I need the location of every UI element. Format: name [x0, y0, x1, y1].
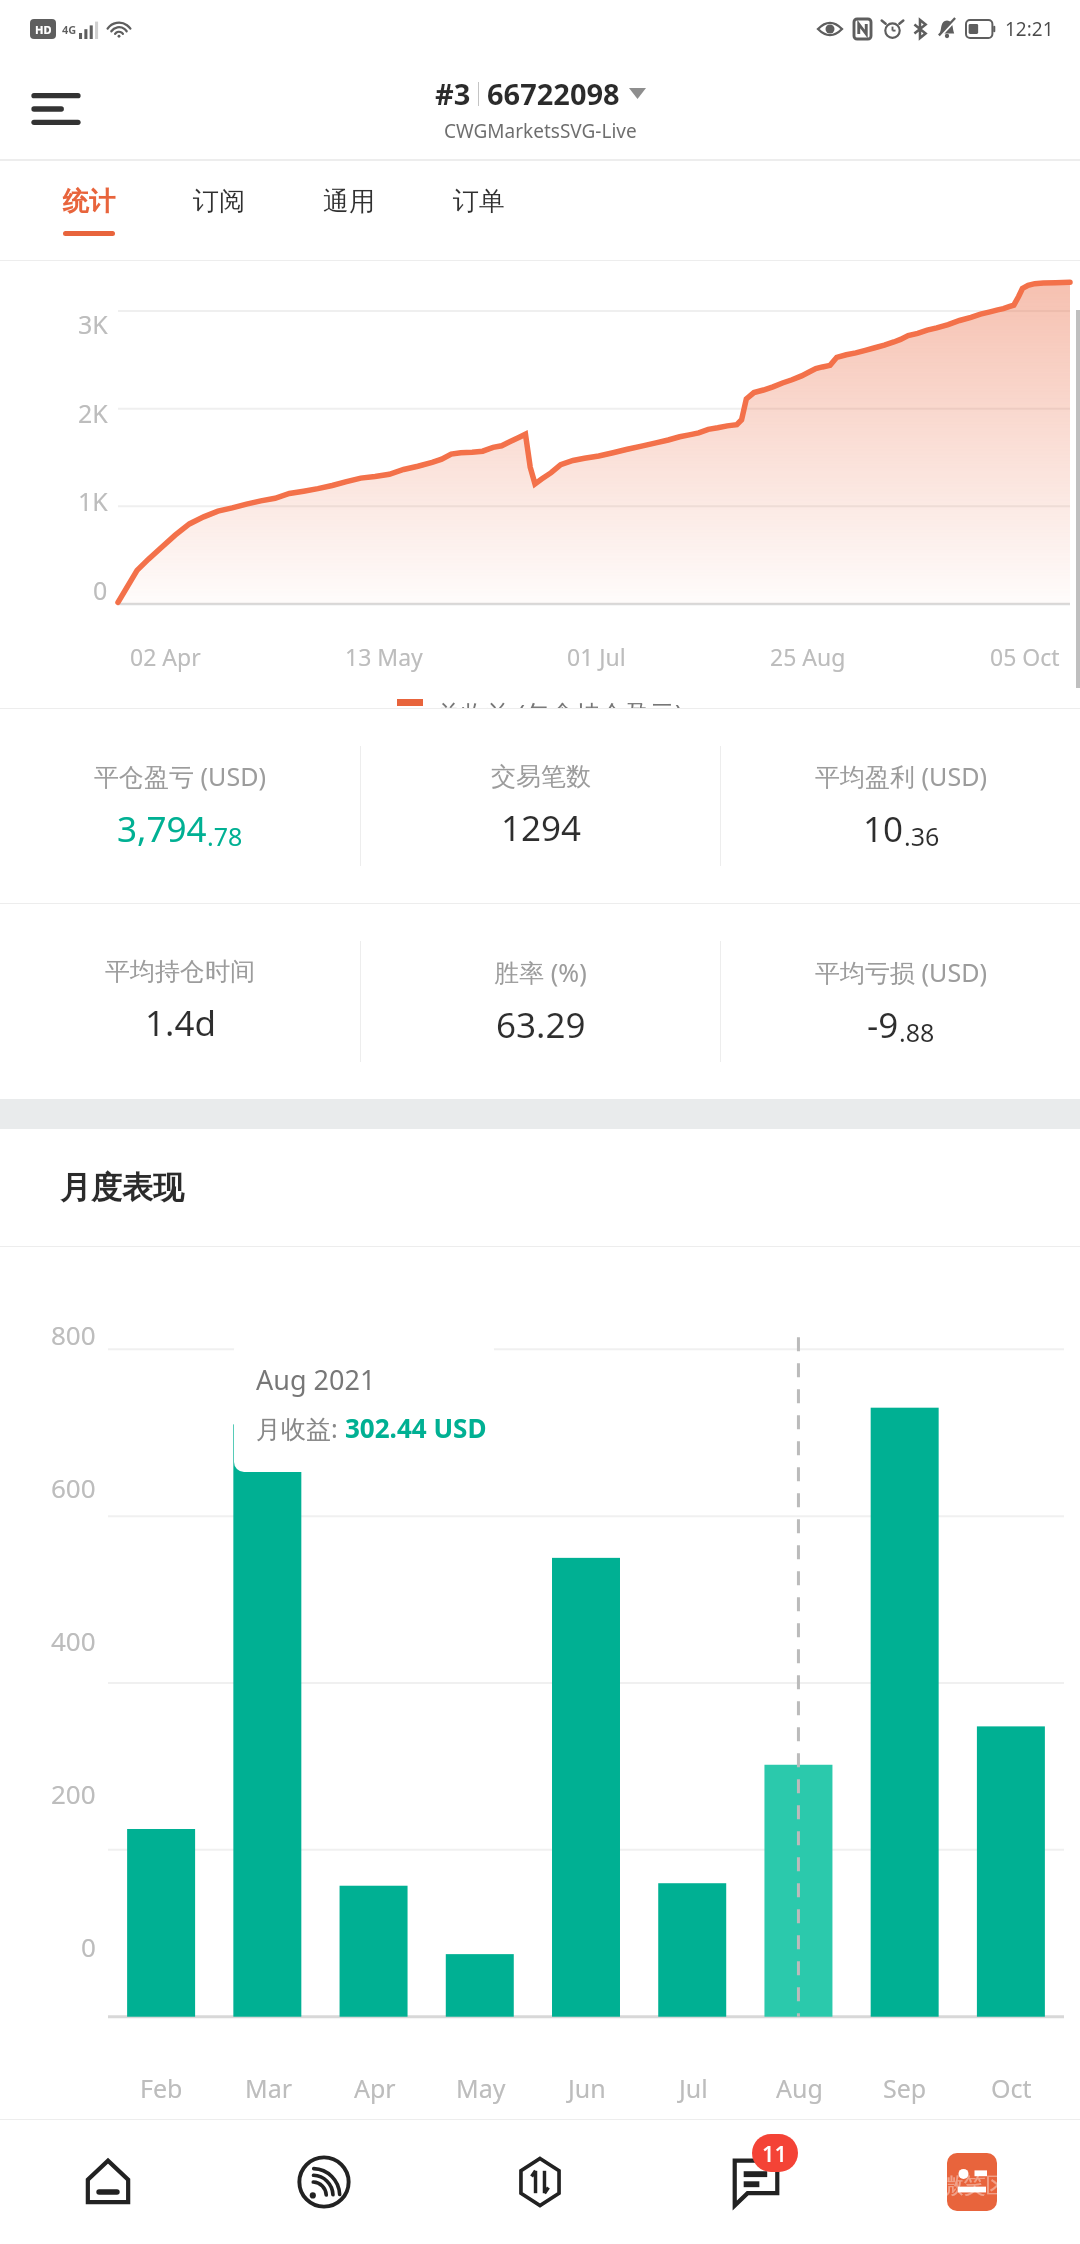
button[interactable]: 平均盈利 (USD) [721, 709, 1080, 903]
staticText: 12:21 [1005, 16, 1054, 42]
staticText: 10 [863, 805, 904, 853]
staticText: 1294 [501, 804, 582, 852]
staticText: #3 [435, 74, 471, 113]
staticText: 13 May [345, 641, 423, 672]
button[interactable]: 通用 [284, 161, 414, 260]
staticText: 平仓盈亏 (USD) [94, 759, 266, 793]
staticText: 月度表现 [60, 1168, 184, 1207]
staticText: 交易笔数 [491, 761, 591, 792]
staticText: 平均亏损 (USD) [815, 955, 987, 989]
staticText: Sep [883, 2071, 927, 2105]
staticText: Feb [140, 2071, 183, 2105]
button[interactable]: #3 [435, 74, 646, 144]
button[interactable]: 订单 [414, 161, 544, 260]
staticText: Aug 2021 [256, 1361, 376, 1398]
staticText: @微微笑区 [900, 2169, 1008, 2199]
staticText: 01 Jul [567, 641, 626, 672]
staticText: 胜率 (%) [494, 955, 587, 989]
button[interactable]: 平仓盈亏 (USD) [0, 709, 360, 903]
staticText: 3K [78, 307, 108, 341]
button[interactable]: Profile [864, 2120, 1080, 2244]
staticText: 1.4d [145, 999, 216, 1047]
button[interactable]: 统计 [24, 161, 154, 260]
staticText: 通用 [323, 185, 375, 218]
staticText: .36 [904, 819, 940, 853]
staticText: Mar [245, 2071, 293, 2105]
staticText: 02 Apr [130, 641, 201, 672]
button[interactable]: 交易笔数 [361, 709, 720, 903]
staticText: 平均持仓时间 [105, 956, 255, 987]
button[interactable]: 胜率 (%) [361, 904, 720, 1099]
button[interactable]: 平均持仓时间 [0, 904, 360, 1099]
staticText: 订单 [453, 185, 505, 218]
button[interactable]: Trade [432, 2120, 648, 2244]
staticText: 平均盈利 (USD) [815, 759, 987, 793]
button[interactable]: Menu [18, 71, 94, 147]
staticText: 25 Aug [770, 641, 846, 672]
staticText: 302.44 USD [345, 1410, 487, 1445]
staticText: 0 [81, 1929, 96, 1964]
staticText: 66722098 [487, 74, 620, 113]
staticText: 总收益 (包含持仓盈亏) [436, 696, 683, 708]
staticText: 0 [93, 573, 108, 607]
button[interactable]: Aug 2021 [234, 1339, 494, 1472]
button[interactable]: Messages [648, 2120, 864, 2244]
staticText: 600 [51, 1470, 96, 1505]
staticText: 统计 [63, 185, 115, 218]
button[interactable]: 平均亏损 (USD) [721, 904, 1080, 1099]
staticText: 05 Oct [990, 641, 1060, 672]
staticText: Oct [991, 2071, 1032, 2105]
staticText: May [456, 2071, 506, 2105]
staticText: Aug [776, 2071, 823, 2105]
staticText: .88 [899, 1015, 935, 1049]
staticText: 4G [62, 22, 77, 37]
button[interactable]: 订阅 [154, 161, 284, 260]
staticText: Jun [568, 2071, 606, 2105]
staticText: 11 [762, 2138, 788, 2168]
staticText: .78 [207, 819, 243, 853]
staticText: 2K [78, 396, 108, 430]
staticText: 63.29 [496, 1001, 586, 1049]
staticText: 800 [51, 1317, 96, 1352]
staticText: 订阅 [193, 185, 245, 218]
staticText: Apr [354, 2071, 396, 2105]
staticText: -9 [867, 1001, 899, 1049]
button[interactable]: Signals [216, 2120, 432, 2244]
staticText: 1K [78, 484, 108, 518]
staticText: CWGMarketsSVG-Live [444, 118, 637, 144]
staticText: 200 [51, 1776, 96, 1811]
staticText: 月收益: [256, 1411, 345, 1445]
button[interactable]: Home [0, 2120, 216, 2244]
staticText: HD [35, 22, 52, 37]
staticText: 400 [51, 1623, 96, 1658]
staticText: 3,794 [117, 805, 207, 853]
staticText: Jul [679, 2071, 708, 2105]
